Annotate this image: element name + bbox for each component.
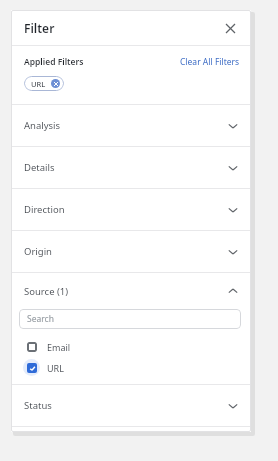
button[interactable]: Origin [11, 231, 251, 272]
button[interactable]: Close [219, 17, 241, 39]
button[interactable]: URL [11, 357, 251, 378]
button[interactable]: Source (1) [11, 273, 251, 309]
staticText: Filter [24, 20, 55, 36]
staticText: Search [27, 313, 54, 325]
staticText: Email [47, 341, 71, 353]
button[interactable]: Status [11, 385, 251, 426]
button[interactable]: Search [19, 309, 241, 329]
button[interactable]: Direction [11, 189, 251, 230]
button[interactable]: Details [11, 147, 251, 188]
other: Remove URL filter [51, 79, 60, 88]
staticText: Details [24, 161, 55, 174]
button[interactable]: URL [24, 76, 64, 91]
staticText: URL [31, 79, 46, 89]
staticText: Applied Filters [24, 56, 84, 68]
staticText: URL [47, 362, 64, 374]
staticText: Status [24, 399, 52, 412]
staticText: Origin [24, 245, 52, 258]
staticText: Source (1) [24, 285, 69, 298]
button[interactable]: Email [11, 336, 251, 357]
button[interactable]: Clear All Filters [180, 56, 240, 68]
staticText: Clear All Filters [180, 56, 240, 68]
staticText: Direction [24, 203, 65, 216]
staticText: Analysis [24, 119, 61, 132]
button[interactable]: Analysis [11, 105, 251, 146]
